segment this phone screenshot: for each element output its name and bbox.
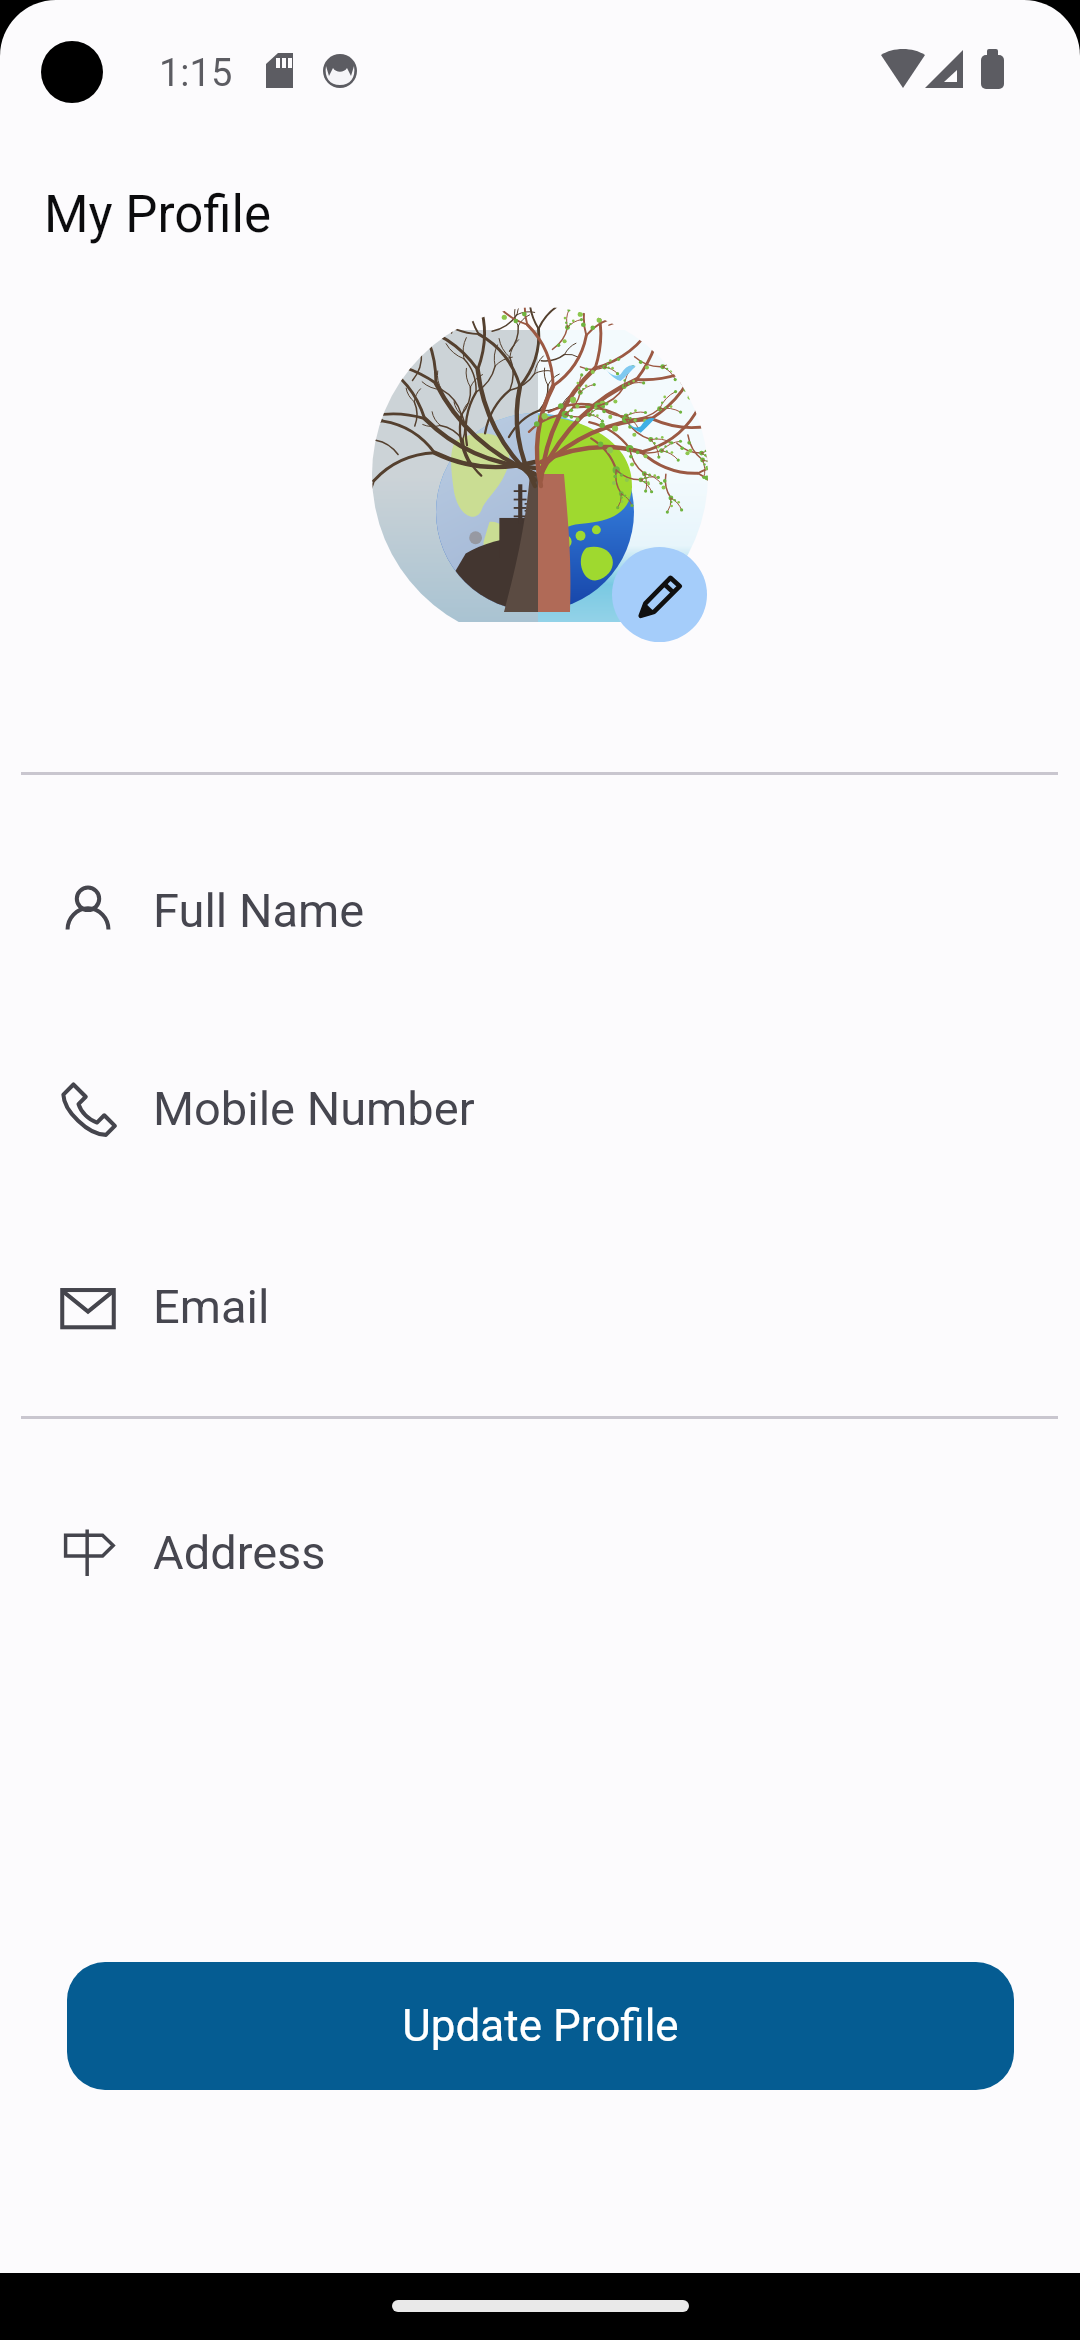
- button[interactable]: Full Name: [0, 854, 1080, 966]
- staticText: My Profile: [44, 185, 272, 245]
- button[interactable]: Update Profile: [67, 1962, 1014, 2090]
- button[interactable]: Edit profile photo: [612, 547, 707, 642]
- button[interactable]: Mobile Number: [0, 1052, 1080, 1164]
- staticText: Mobile Number: [153, 1081, 475, 1136]
- staticText: Email: [153, 1279, 270, 1334]
- staticText: Update Profile: [402, 2000, 679, 2052]
- button[interactable]: Address: [0, 1496, 1080, 1608]
- button[interactable]: Email: [0, 1250, 1080, 1362]
- staticText: Full Name: [153, 883, 365, 938]
- staticText: Address: [153, 1525, 326, 1580]
- staticText: 1:15: [159, 51, 233, 96]
